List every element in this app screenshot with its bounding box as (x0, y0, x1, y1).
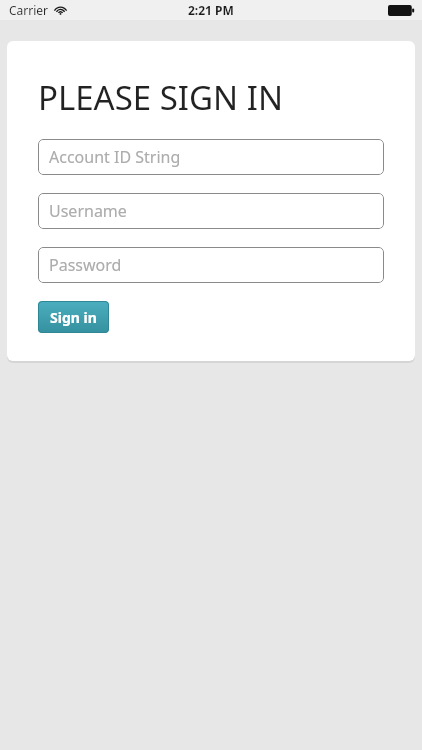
staticText: 2:21 PM (188, 2, 234, 18)
staticText: Account ID String (49, 146, 181, 168)
button[interactable]: Account ID String (38, 139, 384, 175)
button[interactable]: Username (38, 193, 384, 229)
staticText: Password (49, 254, 122, 276)
staticText: Sign in (50, 308, 97, 327)
button[interactable]: Password (38, 247, 384, 283)
staticText: PLEASE SIGN IN (38, 75, 283, 120)
staticText: Carrier (9, 2, 49, 18)
staticText: Username (49, 200, 127, 222)
button[interactable]: Sign in (38, 301, 109, 333)
